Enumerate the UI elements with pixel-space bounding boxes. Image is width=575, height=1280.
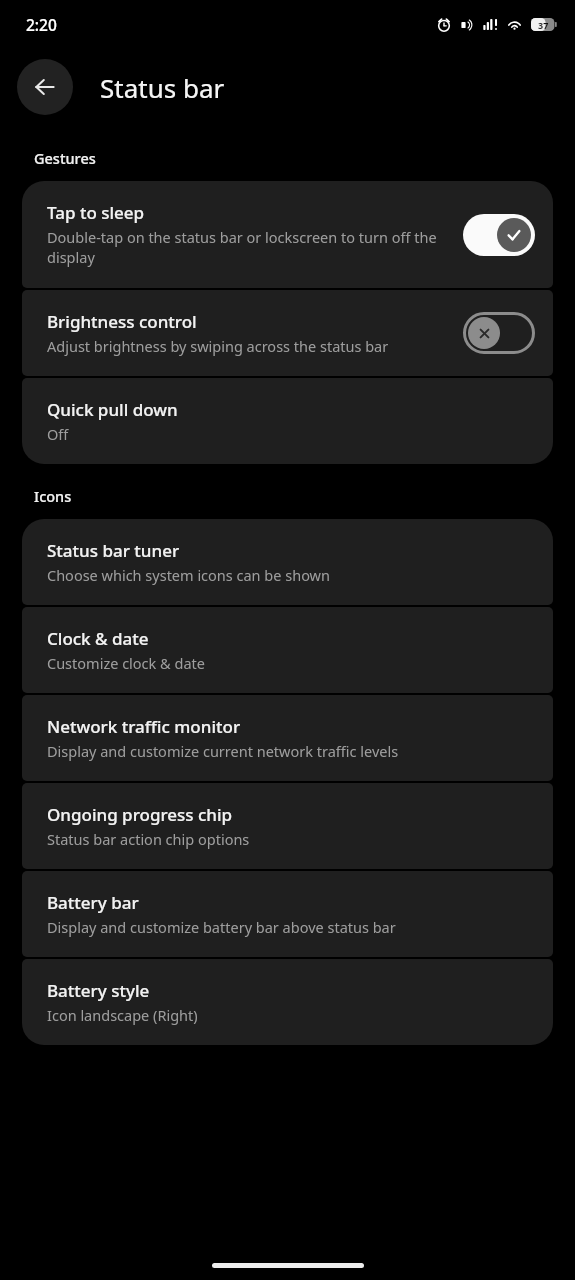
button[interactable]: Back [17,59,73,115]
staticText: Brightness control [47,310,197,333]
staticText: Tap to sleep [47,201,145,224]
staticText: Display and customize current network tr… [47,741,399,761]
staticText: Double-tap on the status bar or lockscre… [47,227,453,268]
staticText: Choose which system icons can be shown [47,565,330,585]
staticText: Battery style [47,979,150,1002]
staticText: Off [47,424,69,444]
staticText: 2:20 [26,14,57,35]
button[interactable]: Quick pull down [22,378,553,464]
staticText: Status bar action chip options [47,829,250,849]
staticText: Network traffic monitor [47,715,241,738]
button[interactable]: Tap to sleep [22,181,553,288]
button[interactable]: Tap to sleep toggle, on [463,214,535,256]
button[interactable]: Clock & date [22,607,553,693]
staticText: Status bar [100,70,225,105]
button[interactable]: Battery style [22,959,553,1045]
staticText: Adjust brightness by swiping across the … [47,336,389,356]
staticText: Icon landscape (Right) [47,1005,198,1025]
staticText: Battery bar [47,891,139,914]
staticText: Quick pull down [47,398,178,421]
button[interactable]: Brightness control toggle, off [463,312,535,354]
staticText: Gestures [34,148,96,168]
button[interactable]: Ongoing progress chip [22,783,553,869]
staticText: Icons [34,486,72,506]
button[interactable]: Battery bar [22,871,553,957]
staticText: Clock & date [47,627,149,650]
button[interactable]: Network traffic monitor [22,695,553,781]
button[interactable]: Brightness control [22,290,553,376]
button[interactable]: Status bar tuner [22,519,553,605]
staticText: Display and customize battery bar above … [47,917,396,937]
staticText: Status bar tuner [47,539,180,562]
staticText: 37 [538,19,549,31]
staticText: Customize clock & date [47,653,205,673]
staticText: Ongoing progress chip [47,803,233,826]
